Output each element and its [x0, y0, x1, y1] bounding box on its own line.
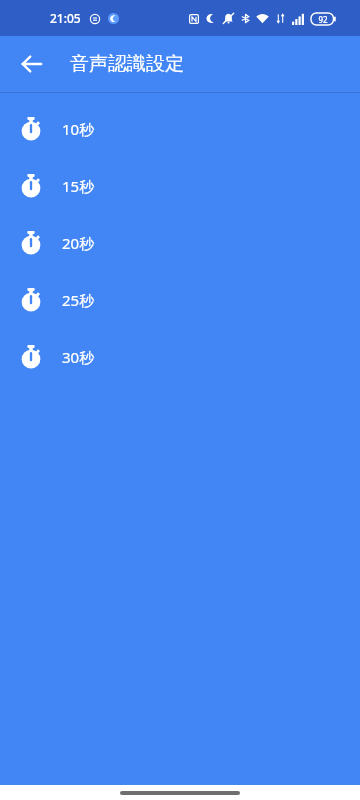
staticText: 21:05: [50, 10, 81, 26]
button[interactable]: 25秒: [0, 271, 360, 328]
staticText: 25秒: [62, 290, 95, 310]
staticText: 音声認識設定: [70, 52, 184, 76]
staticText: 15秒: [62, 176, 95, 196]
staticText: 10秒: [62, 119, 95, 139]
button[interactable]: 20秒: [0, 214, 360, 271]
button[interactable]: 10秒: [0, 100, 360, 157]
staticText: 30秒: [62, 347, 95, 367]
button[interactable]: 15秒: [0, 157, 360, 214]
button[interactable]: Back: [8, 40, 56, 88]
staticText: 92: [318, 14, 328, 25]
staticText: 20秒: [62, 233, 95, 253]
button[interactable]: 30秒: [0, 328, 360, 385]
